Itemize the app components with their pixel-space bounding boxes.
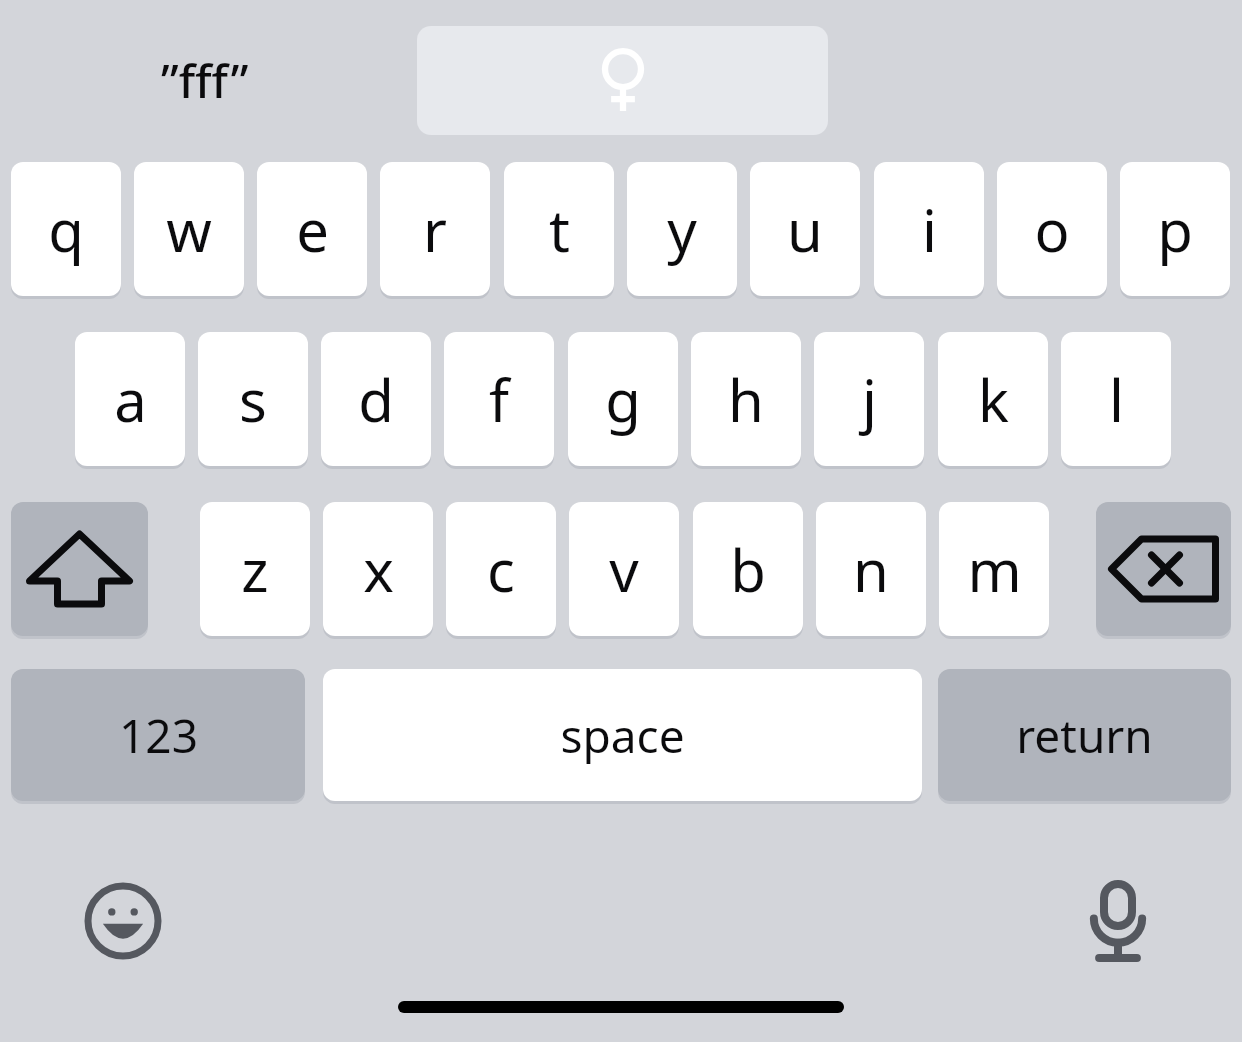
button[interactable]: f (444, 332, 554, 466)
staticText: b (730, 530, 766, 609)
button[interactable]: return (938, 669, 1231, 801)
button[interactable]: e (257, 162, 367, 296)
staticText: a (114, 360, 147, 439)
staticText: y (667, 190, 697, 269)
staticText: c (487, 530, 515, 609)
staticText: k (978, 360, 1009, 439)
button[interactable]: Female symbol suggestion (417, 26, 828, 135)
button[interactable]: Shift (11, 502, 148, 636)
staticText: j (862, 360, 877, 439)
button[interactable]: ”fff” (110, 26, 300, 135)
staticText: ”fff” (161, 49, 249, 112)
button[interactable]: Emoji keyboard (78, 876, 168, 966)
staticText: e (296, 190, 329, 269)
staticText: q (48, 190, 84, 269)
button[interactable]: Dictation (1073, 876, 1163, 966)
button[interactable]: u (750, 162, 860, 296)
staticText: z (241, 530, 269, 609)
button[interactable]: i (874, 162, 984, 296)
staticText: l (1109, 360, 1124, 439)
button[interactable]: w (134, 162, 244, 296)
staticText: 123 (119, 704, 198, 767)
staticText: return (1016, 704, 1153, 767)
staticText: v (609, 530, 639, 609)
staticText: t (549, 190, 570, 269)
button[interactable]: b (693, 502, 803, 636)
button[interactable]: a (75, 332, 185, 466)
button[interactable]: j (814, 332, 924, 466)
button[interactable]: c (446, 502, 556, 636)
staticText: r (423, 190, 447, 269)
button[interactable]: z (200, 502, 310, 636)
button[interactable]: r (380, 162, 490, 296)
button[interactable]: space (323, 669, 922, 801)
button[interactable]: m (939, 502, 1049, 636)
staticText: g (605, 360, 641, 439)
button[interactable]: l (1061, 332, 1171, 466)
staticText: d (358, 360, 394, 439)
button[interactable]: s (198, 332, 308, 466)
staticText: m (967, 530, 1022, 609)
button[interactable]: y (627, 162, 737, 296)
staticText: f (489, 360, 509, 439)
button[interactable]: q (11, 162, 121, 296)
staticText: h (728, 360, 764, 439)
staticText: space (560, 704, 685, 767)
button[interactable]: 123 (11, 669, 305, 801)
button[interactable]: n (816, 502, 926, 636)
staticText: w (166, 190, 212, 269)
staticText: p (1157, 190, 1193, 269)
button[interactable]: v (569, 502, 679, 636)
staticText: n (853, 530, 889, 609)
staticText: s (239, 360, 267, 439)
button[interactable]: p (1120, 162, 1230, 296)
staticText: i (922, 190, 937, 269)
button[interactable]: g (568, 332, 678, 466)
staticText: o (1034, 190, 1070, 269)
staticText: u (787, 190, 823, 269)
button[interactable]: o (997, 162, 1107, 296)
button[interactable]: h (691, 332, 801, 466)
button[interactable]: Backspace (1096, 502, 1231, 636)
button[interactable]: d (321, 332, 431, 466)
button[interactable]: k (938, 332, 1048, 466)
button[interactable]: t (504, 162, 614, 296)
staticText: x (363, 530, 394, 609)
button[interactable]: x (323, 502, 433, 636)
